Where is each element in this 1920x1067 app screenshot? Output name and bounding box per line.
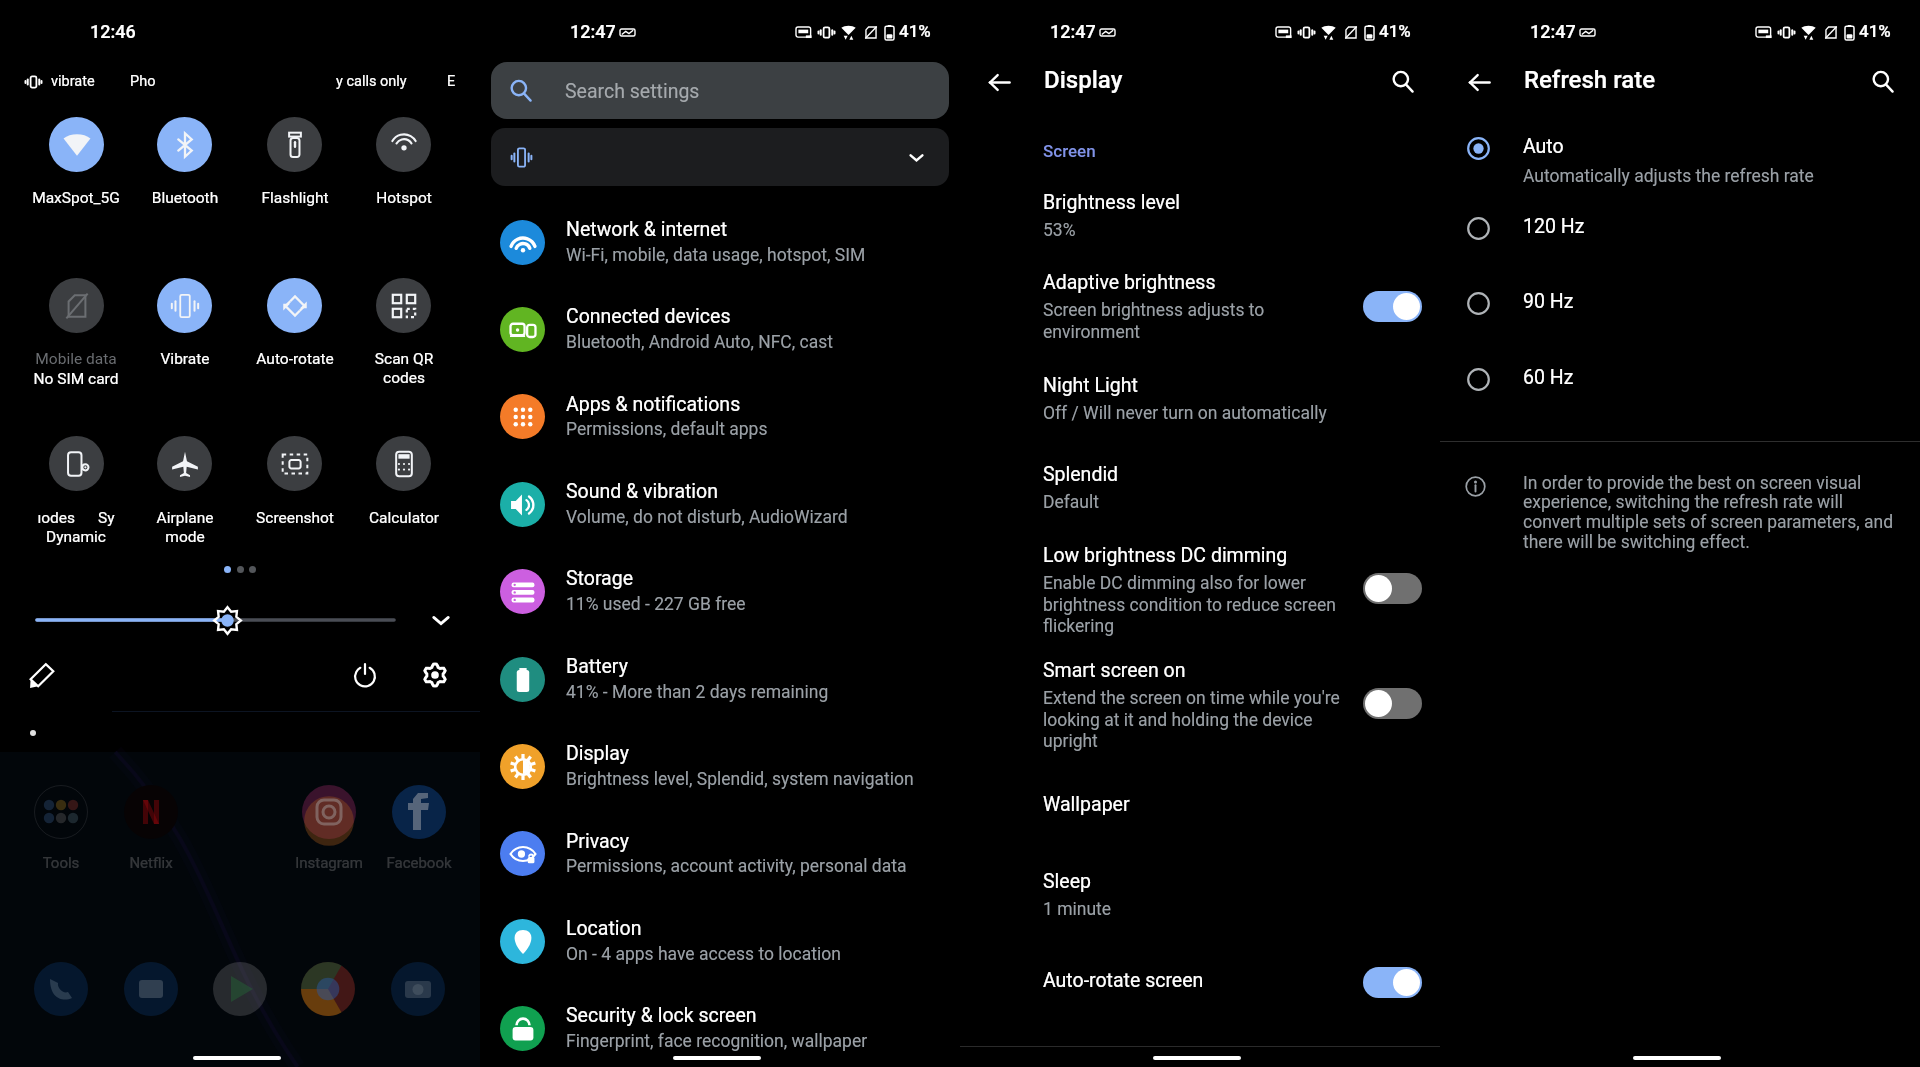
button[interactable] — [22, 108, 130, 216]
staticText: vibrate — [51, 73, 95, 90]
button[interactable] — [480, 461, 960, 548]
button[interactable] — [301, 962, 355, 1016]
staticText: Brightness level, Splendid, system navig… — [566, 769, 914, 790]
staticText: Bluetooth — [123, 189, 247, 207]
staticText: Facebook — [371, 854, 467, 872]
staticText: Auto-rotate — [233, 350, 357, 368]
button[interactable] — [350, 269, 458, 377]
button[interactable] — [960, 648, 1440, 749]
button[interactable]: Edit — [29, 662, 56, 689]
staticText: Refresh rate — [1524, 66, 1656, 94]
staticText: 12:47 — [570, 21, 616, 42]
staticText: ıodes Sy — [14, 509, 138, 527]
button[interactable] — [480, 898, 960, 985]
button[interactable] — [491, 128, 949, 186]
button[interactable] — [480, 636, 960, 723]
staticText: Enable DC dimming also for lower brightn… — [1043, 573, 1336, 636]
button[interactable] — [480, 199, 960, 286]
button[interactable] — [241, 108, 349, 216]
button[interactable] — [1440, 271, 1920, 335]
button[interactable] — [22, 428, 130, 536]
button[interactable] — [350, 428, 458, 536]
button[interactable] — [131, 428, 239, 536]
staticText: MaxSpot_5G — [14, 189, 138, 207]
button[interactable] — [480, 723, 960, 810]
staticText: Display — [1044, 66, 1123, 94]
button[interactable] — [960, 180, 1440, 239]
button[interactable] — [241, 269, 349, 377]
button[interactable]: Back — [1457, 60, 1501, 104]
button[interactable] — [302, 785, 356, 839]
button[interactable] — [1440, 116, 1920, 192]
staticText: On - 4 apps have access to location — [566, 944, 841, 965]
staticText: Screen brightness adjusts to environment — [1043, 300, 1265, 342]
staticText: 12:47 — [1530, 21, 1576, 42]
staticText: Sleep — [1043, 870, 1091, 893]
button[interactable] — [350, 108, 458, 216]
staticText: Flashlight — [233, 189, 357, 207]
button[interactable] — [960, 260, 1440, 340]
button[interactable]: Power — [352, 662, 378, 688]
button[interactable] — [480, 985, 960, 1067]
button[interactable] — [1440, 196, 1920, 260]
staticText: Permissions, default apps — [566, 419, 768, 440]
button[interactable] — [34, 962, 88, 1016]
staticText: 41% — [1859, 21, 1891, 41]
button[interactable] — [1440, 347, 1920, 411]
button[interactable] — [960, 363, 1440, 422]
button[interactable]: Expand quick settings — [428, 607, 454, 633]
staticText: Screen — [1043, 141, 1096, 161]
button[interactable]: Search — [1381, 60, 1425, 104]
staticText: Off / Will never turn on automatically — [1043, 403, 1327, 424]
button[interactable] — [1363, 967, 1422, 998]
button[interactable] — [960, 958, 1440, 996]
staticText: y calls only — [336, 73, 407, 90]
staticText: Fingerprint, face recognition, wallpaper — [566, 1031, 868, 1052]
staticText: Auto-rotate screen — [1043, 969, 1204, 992]
staticText: Wi-Fi, mobile, data usage, hotspot, SIM — [566, 245, 866, 266]
button[interactable]: Settings — [423, 663, 447, 687]
staticText: Airplane mode — [123, 509, 247, 546]
button[interactable]: Back — [977, 60, 1021, 104]
staticText: Night Light — [1043, 374, 1138, 397]
button[interactable] — [480, 373, 960, 460]
button[interactable] — [1363, 291, 1422, 322]
staticText: Smart screen on — [1043, 659, 1186, 682]
staticText: Default — [1043, 492, 1099, 513]
button[interactable] — [391, 962, 445, 1016]
staticText: Auto — [1523, 135, 1564, 158]
button[interactable] — [124, 962, 178, 1016]
button[interactable] — [1363, 688, 1422, 719]
button[interactable]: Search settings — [491, 62, 949, 119]
button[interactable] — [1363, 573, 1422, 604]
staticText: Scan QR codes — [342, 350, 466, 387]
staticText: Vibrate — [123, 350, 247, 368]
button[interactable]: Search — [1861, 60, 1905, 104]
staticText: Battery — [566, 655, 628, 678]
button[interactable] — [131, 108, 239, 216]
staticText: Automatically adjusts the refresh rate — [1523, 166, 1814, 187]
button[interactable] — [960, 859, 1440, 918]
button[interactable] — [960, 533, 1440, 634]
staticText: Screenshot — [233, 509, 357, 527]
button[interactable] — [392, 785, 446, 839]
button[interactable] — [480, 810, 960, 897]
button[interactable] — [960, 782, 1440, 820]
button[interactable] — [480, 286, 960, 373]
staticText: Sound & vibration — [566, 480, 719, 503]
button[interactable] — [241, 428, 349, 536]
button[interactable] — [480, 548, 960, 635]
button[interactable] — [960, 452, 1440, 511]
button[interactable] — [34, 785, 88, 839]
staticText: Dynamic — [14, 528, 138, 546]
staticText: Privacy — [566, 830, 629, 853]
button[interactable] — [131, 269, 239, 377]
button[interactable] — [124, 785, 178, 839]
button[interactable] — [213, 962, 267, 1016]
button[interactable] — [22, 269, 130, 377]
staticText: 11% used - 227 GB free — [566, 594, 746, 615]
staticText: Tools — [13, 854, 109, 872]
staticText: Permissions, account activity, personal … — [566, 856, 907, 877]
staticText: Storage — [566, 567, 634, 590]
staticText: 41% — [899, 21, 931, 41]
